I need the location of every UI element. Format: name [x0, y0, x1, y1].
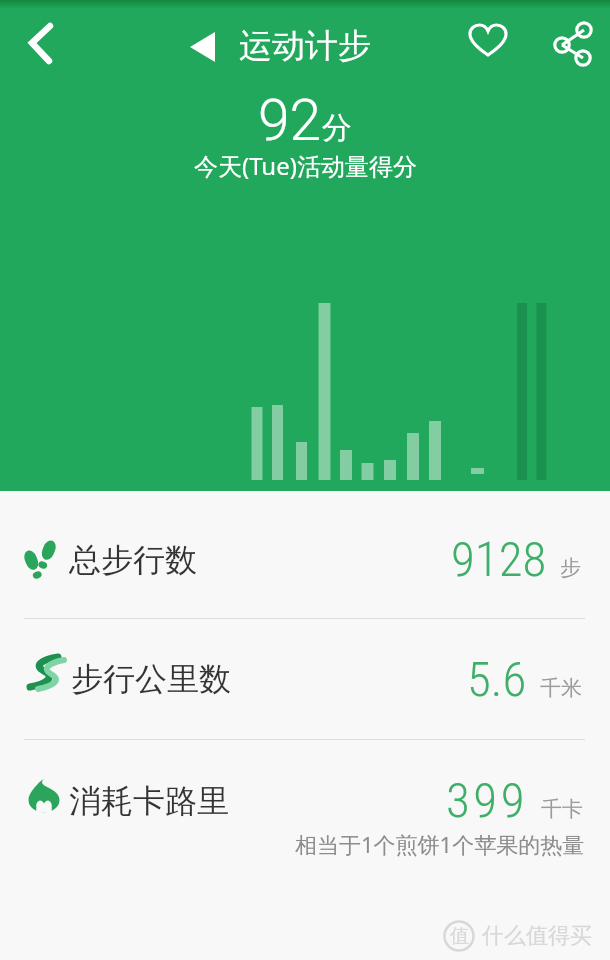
- button[interactable]: [540, 8, 596, 64]
- staticText: 9128: [451, 531, 547, 588]
- staticText: 分: [322, 109, 352, 147]
- staticText: 什么值得买: [482, 922, 592, 950]
- button[interactable]: [12, 14, 68, 70]
- staticText: 步行公里数: [71, 659, 231, 699]
- staticText: 92: [258, 87, 322, 154]
- staticText: 运动计步: [239, 25, 371, 67]
- staticText: 步: [560, 555, 581, 581]
- button[interactable]: 步行公里数: [0, 619, 610, 739]
- button[interactable]: 总步行数: [0, 491, 610, 618]
- staticText: 值: [450, 924, 469, 948]
- staticText: 千卡: [541, 796, 583, 822]
- staticText: 消耗卡路里: [69, 781, 229, 821]
- staticText: 5.6: [467, 651, 527, 708]
- staticText: 今天(Tue)活动量得分: [194, 149, 417, 182]
- button[interactable]: 消耗卡路里: [0, 740, 610, 960]
- button[interactable]: [460, 15, 516, 71]
- staticText: 总步行数: [69, 540, 197, 580]
- staticText: 相当于1个煎饼1个苹果的热量: [295, 829, 585, 859]
- staticText: 399: [446, 772, 528, 829]
- staticText: 千米: [540, 675, 582, 701]
